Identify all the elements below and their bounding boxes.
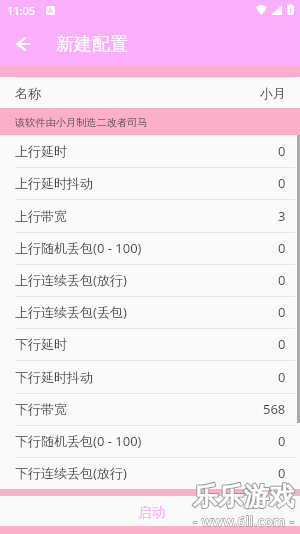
button[interactable]: 名称	[0, 77, 300, 108]
staticText: 11:05	[7, 3, 36, 18]
staticText: 0	[278, 142, 286, 160]
button[interactable]: 下行延时抖动	[0, 360, 300, 393]
staticText: 下行延时	[15, 336, 67, 352]
button[interactable]: 上行带宽	[0, 199, 300, 232]
staticText: 568	[263, 400, 286, 418]
staticText: - www.6ll.com -	[193, 512, 295, 530]
staticText: 下行带宽	[15, 401, 67, 417]
staticText: 0	[278, 522, 286, 534]
staticText: 下行延时抖动	[15, 369, 93, 385]
button[interactable]: 下行随机丢包(0 - 100)	[0, 425, 300, 457]
button[interactable]: 开启日志	[0, 522, 300, 534]
staticText: 0	[278, 368, 286, 386]
staticText: 0	[278, 303, 286, 321]
staticText: 启动	[138, 504, 165, 521]
staticText: 乐乐游戏	[193, 481, 295, 512]
button[interactable]: 下行连续丢包(放行)	[0, 457, 300, 489]
staticText: 新建配置	[56, 33, 128, 56]
staticText: 该软件由小月制造二改者司马	[15, 116, 148, 129]
staticText: 乐乐游戏	[193, 481, 295, 512]
staticText: 上行延时	[15, 143, 67, 159]
staticText: 开启日志	[15, 522, 67, 534]
staticText: 上行随机丢包(0 - 100)	[15, 239, 142, 257]
staticText: 上行连续丢包(丢包)	[15, 303, 127, 321]
staticText: 0	[278, 432, 286, 450]
button[interactable]: 下行延时	[0, 328, 300, 360]
staticText: 3	[278, 207, 286, 225]
button[interactable]: 上行延时抖动	[0, 167, 300, 199]
staticText: 0	[278, 174, 286, 192]
staticText: A	[48, 6, 53, 15]
staticText: 0	[278, 239, 286, 257]
staticText: 名称	[15, 85, 41, 101]
button[interactable]: Back	[7, 28, 39, 60]
staticText: 0	[278, 497, 286, 515]
staticText: 上行连续丢包(放行)	[15, 271, 127, 289]
staticText: 小月	[260, 85, 286, 101]
button[interactable]: 下行连续丢包(丢包)	[0, 489, 300, 522]
staticText: 0	[278, 335, 286, 353]
staticText: 0	[278, 271, 286, 289]
staticText: 上行延时抖动	[15, 175, 93, 191]
button[interactable]: 下行带宽	[0, 393, 300, 425]
button[interactable]: 启动	[0, 496, 300, 526]
staticText: 下行随机丢包(0 - 100)	[15, 432, 142, 450]
button[interactable]: 上行延时	[0, 135, 300, 167]
staticText: 下行连续丢包(放行)	[15, 464, 127, 482]
staticText: 0	[278, 464, 286, 482]
staticText: 上行带宽	[15, 208, 67, 224]
staticText: - www.6ll.com -	[193, 512, 295, 530]
button[interactable]: 上行随机丢包(0 - 100)	[0, 232, 300, 264]
button[interactable]: 上行连续丢包(放行)	[0, 264, 300, 296]
button[interactable]: 上行连续丢包(丢包)	[0, 296, 300, 328]
